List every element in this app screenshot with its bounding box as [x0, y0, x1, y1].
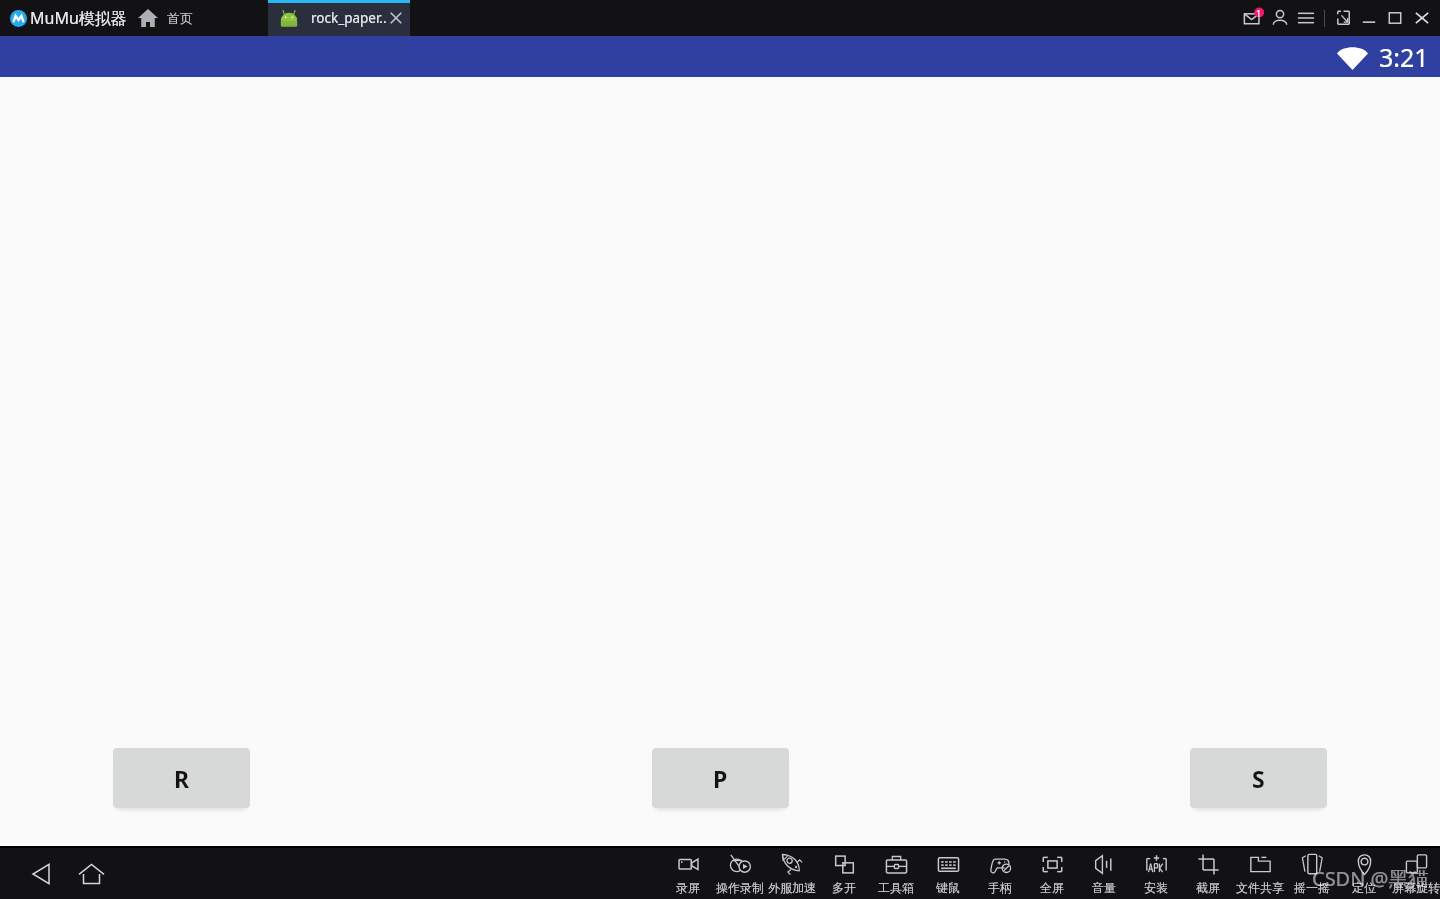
staticText: 操作录制	[716, 880, 764, 895]
staticText: P	[713, 763, 728, 794]
button[interactable]: Close tab	[384, 6, 408, 30]
button[interactable]: 工具箱	[870, 848, 922, 899]
staticText: 多开	[832, 880, 856, 895]
button[interactable]: 键鼠	[922, 848, 974, 899]
button[interactable]: S	[1190, 748, 1327, 808]
button[interactable]: 截屏	[1182, 848, 1234, 899]
staticText: 首页	[167, 10, 193, 26]
staticText: 全屏	[1040, 880, 1064, 895]
button[interactable]: Home	[75, 858, 107, 890]
staticText: 截屏	[1196, 880, 1220, 895]
staticText: 工具箱	[878, 880, 914, 895]
button[interactable]: Maximize	[1382, 5, 1408, 31]
button[interactable]: Home	[135, 5, 161, 31]
staticText: MuMu模拟器	[30, 7, 127, 29]
button[interactable]: 多开	[818, 848, 870, 899]
staticText: 摇一摇	[1294, 880, 1330, 895]
button[interactable]: rock_paper..	[268, 0, 410, 36]
staticText: 定位	[1352, 880, 1376, 895]
button[interactable]: 定位	[1338, 848, 1390, 899]
button[interactable]: Account	[1267, 5, 1293, 31]
button[interactable]: 安装	[1130, 848, 1182, 899]
button[interactable]: 摇一摇	[1286, 848, 1338, 899]
staticText: 1	[1256, 7, 1262, 19]
button[interactable]: 手柄	[974, 848, 1026, 899]
button[interactable]: P	[652, 748, 789, 808]
button[interactable]: 外服加速	[766, 848, 818, 899]
staticText: 安装	[1144, 880, 1168, 895]
button[interactable]: 屏幕旋转	[1390, 848, 1440, 899]
button[interactable]: MuMu模拟器	[10, 0, 127, 36]
staticText: 键鼠	[936, 880, 960, 895]
staticText: rock_paper..	[311, 9, 387, 27]
staticText: 音量	[1092, 880, 1116, 895]
staticText: 录屏	[676, 880, 700, 895]
button[interactable]: R	[113, 748, 250, 808]
button[interactable]: 音量	[1078, 848, 1130, 899]
button[interactable]: 文件共享	[1234, 848, 1286, 899]
staticText: 3:21	[1379, 40, 1429, 74]
staticText: 屏幕旋转	[1392, 880, 1440, 895]
button[interactable]: Restore	[1330, 5, 1356, 31]
button[interactable]: 全屏	[1026, 848, 1078, 899]
staticText: 外服加速	[768, 880, 816, 895]
button[interactable]: Minimize	[1356, 5, 1382, 31]
button[interactable]: Back	[25, 858, 57, 890]
staticText: CSDN @黑猫	[1312, 865, 1429, 892]
staticText: R	[174, 763, 190, 794]
button[interactable]: 首页	[167, 10, 193, 26]
button[interactable]: Menu	[1293, 5, 1319, 31]
button[interactable]: Close	[1408, 4, 1436, 32]
button[interactable]: 操作录制	[714, 848, 766, 899]
staticText: 文件共享	[1236, 880, 1284, 895]
staticText: 手柄	[988, 880, 1012, 895]
button[interactable]: Messages	[1241, 5, 1267, 31]
staticText: S	[1252, 763, 1265, 794]
button[interactable]: 录屏	[662, 848, 714, 899]
